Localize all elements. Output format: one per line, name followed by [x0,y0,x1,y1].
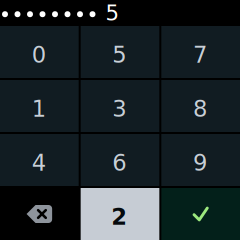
button[interactable]: 5 [81,26,159,78]
staticText: 5 [112,42,126,68]
button[interactable]: 0 [0,26,79,78]
button[interactable]: Delete [0,188,79,240]
staticText: 5 [105,1,119,25]
staticText: 9 [193,150,207,176]
staticText: 3 [112,96,126,122]
button[interactable]: 6 [81,134,159,186]
button[interactable]: 9 [161,134,240,186]
staticText: 2 [111,204,127,230]
button[interactable]: 1 [0,80,79,132]
staticText: 4 [32,150,46,176]
staticText: 7 [193,42,207,68]
button[interactable]: 7 [161,26,240,78]
staticText: 0 [32,42,46,68]
button[interactable]: 2 [81,188,159,240]
button[interactable]: Confirm [161,188,240,240]
staticText: 6 [112,150,126,176]
button[interactable]: 8 [161,80,240,132]
staticText: 8 [193,96,207,122]
staticText: 1 [32,96,46,122]
button[interactable]: 3 [81,80,159,132]
button[interactable]: 4 [0,134,79,186]
